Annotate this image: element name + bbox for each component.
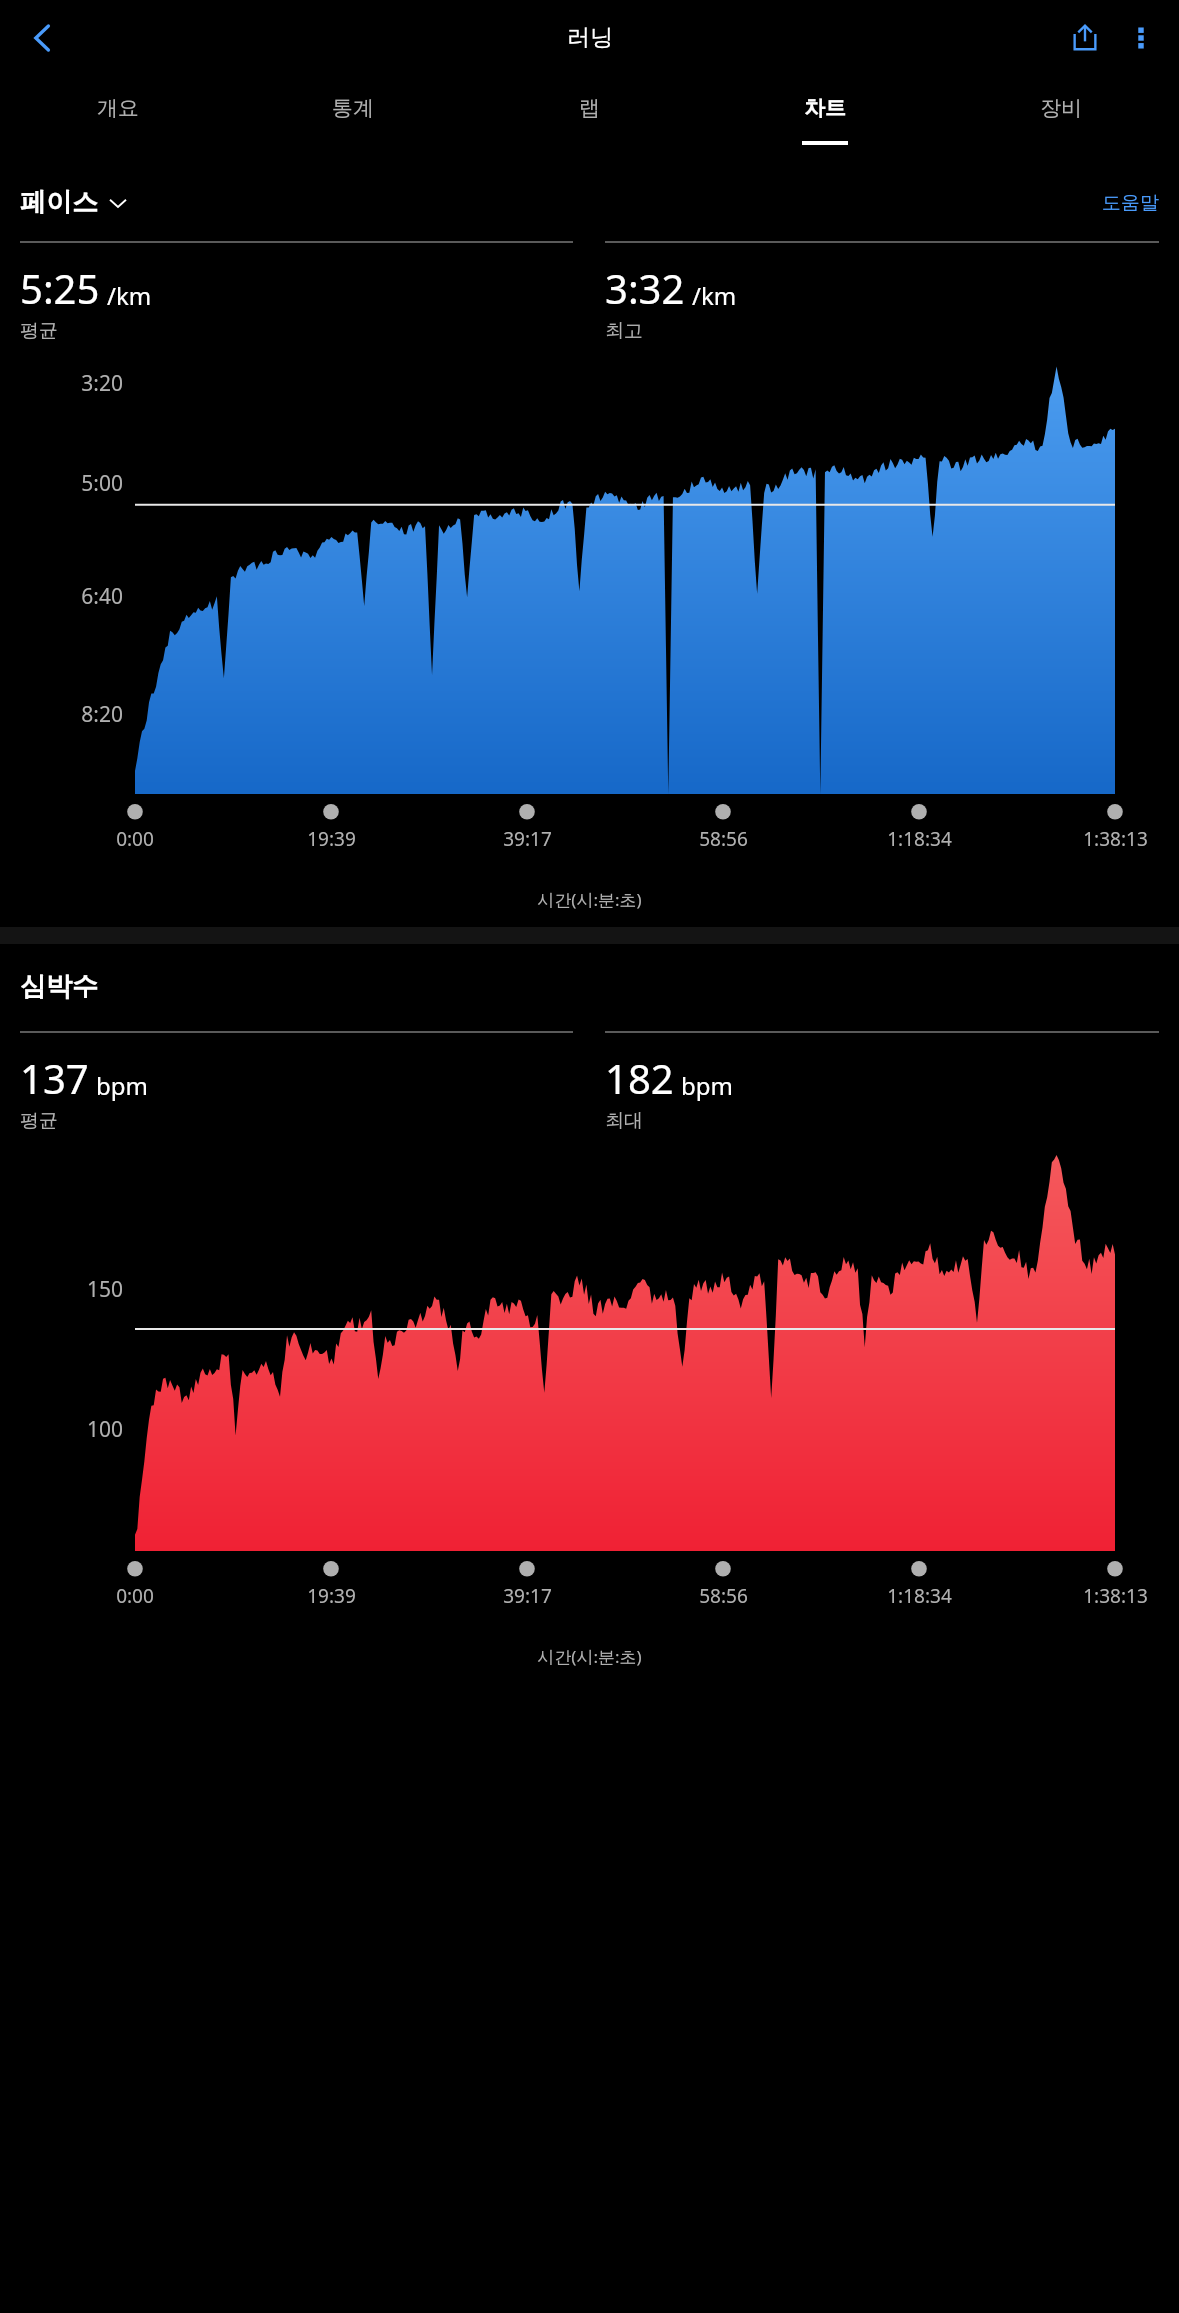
staticText: 심박수 [20, 970, 98, 1003]
staticText: 러닝 [567, 23, 613, 52]
button[interactable]: 182 [605, 1031, 1159, 1133]
staticText: 페이스 [20, 186, 98, 219]
staticText: 8:20 [81, 700, 123, 729]
button[interactable]: 도움말 [1102, 191, 1159, 215]
staticText: bpm [681, 1069, 733, 1102]
button[interactable]: Share [1057, 10, 1113, 66]
button[interactable]: 차트 [707, 75, 943, 172]
staticText: 150 [86, 1275, 123, 1304]
button[interactable]: 랩 [471, 75, 707, 172]
staticText: 도움말 [1102, 191, 1159, 215]
staticText: 1:18:34 [887, 1583, 952, 1609]
staticText: 3:32 [605, 261, 685, 315]
staticText: /km [107, 279, 152, 312]
staticText: 랩 [579, 95, 600, 121]
button[interactable]: Back [14, 9, 72, 67]
staticText: 통계 [332, 95, 374, 121]
staticText: 시간(시:분:초) [0, 888, 1179, 911]
staticText: 0:00 [116, 826, 154, 852]
staticText: 1:38:13 [1083, 1583, 1148, 1609]
button[interactable]: 장비 [943, 75, 1179, 172]
staticText: 최대 [605, 1109, 643, 1133]
staticText: 1:38:13 [1083, 826, 1148, 852]
button[interactable]: 통계 [235, 75, 471, 172]
staticText: 최고 [605, 319, 643, 343]
button[interactable]: 5:25 [20, 241, 573, 343]
staticText: 39:17 [503, 1583, 552, 1609]
staticText: 19:39 [307, 1583, 356, 1609]
staticText: 137 [20, 1051, 89, 1105]
staticText: 182 [605, 1051, 674, 1105]
staticText: 5:25 [20, 261, 100, 315]
staticText: 평균 [20, 1109, 58, 1133]
staticText: 39:17 [503, 826, 552, 852]
button[interactable]: 3:32 [605, 241, 1159, 343]
staticText: 58:56 [699, 826, 748, 852]
staticText: 시간(시:분:초) [0, 1645, 1179, 1668]
staticText: 100 [86, 1415, 123, 1444]
button[interactable]: 137 [20, 1031, 573, 1133]
button[interactable]: 페이스 [20, 186, 128, 219]
staticText: 평균 [20, 319, 58, 343]
staticText: 차트 [804, 95, 846, 121]
staticText: 3:20 [81, 369, 123, 398]
staticText: 6:40 [81, 582, 123, 611]
staticText: /km [692, 279, 737, 312]
staticText: 1:18:34 [887, 826, 952, 852]
staticText: bpm [96, 1069, 148, 1102]
button[interactable]: 개요 [0, 75, 235, 172]
staticText: 0:00 [116, 1583, 154, 1609]
staticText: 장비 [1040, 95, 1082, 121]
staticText: 개요 [97, 95, 139, 121]
staticText: 19:39 [307, 826, 356, 852]
button[interactable]: More options [1113, 10, 1169, 66]
staticText: 58:56 [699, 1583, 748, 1609]
staticText: 5:00 [81, 469, 123, 498]
